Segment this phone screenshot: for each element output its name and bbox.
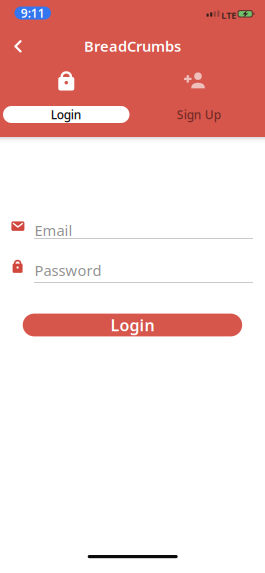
button[interactable]: Login [3, 106, 129, 123]
button[interactable]: Back [6, 32, 30, 61]
staticText: Login [51, 106, 82, 122]
button[interactable]: Login [23, 314, 242, 336]
staticText: Email [34, 220, 72, 240]
staticText: Sign Up [177, 106, 221, 122]
button[interactable]: Sign Up [135, 106, 262, 123]
staticText: 9:11 [21, 5, 45, 21]
staticText: Login [110, 314, 154, 336]
staticText: Password [34, 260, 101, 280]
staticText: BreadCrumbs [84, 36, 181, 56]
staticText: LTE [221, 9, 236, 21]
